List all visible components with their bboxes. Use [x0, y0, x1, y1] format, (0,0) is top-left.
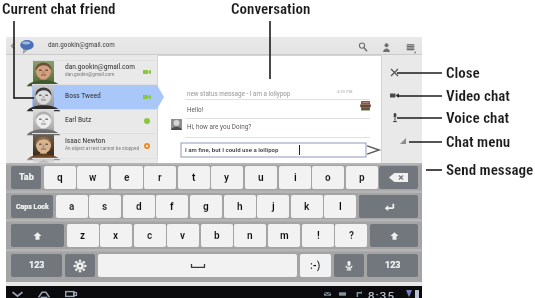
button[interactable]: x	[100, 224, 132, 247]
button[interactable]: f	[156, 195, 188, 218]
button[interactable]: d	[123, 195, 155, 218]
staticText: Send message	[446, 161, 534, 179]
button[interactable]: I am fine, but I could use a lollipop	[181, 143, 366, 157]
button[interactable]: Isaac Newton	[6, 134, 166, 158]
button[interactable]: Tab	[11, 166, 41, 189]
staticText: Video chat	[446, 87, 510, 105]
button[interactable]	[65, 254, 95, 277]
button[interactable]: l	[324, 195, 356, 218]
button[interactable]: h	[224, 195, 256, 218]
button[interactable]: Video chat	[389, 90, 400, 101]
button[interactable]: q	[44, 166, 76, 189]
staticText: Isaac Newton	[65, 137, 106, 145]
staticText: dan.gookin@gmail.com	[65, 72, 115, 78]
button[interactable]	[379, 166, 418, 189]
button[interactable]: 123	[367, 254, 418, 277]
button[interactable]: :-)	[300, 254, 331, 277]
staticText: Earl Butz	[65, 116, 92, 124]
staticText: ?	[349, 230, 354, 242]
button[interactable]: Send message	[364, 141, 382, 159]
staticText: dan.gookin@gmail.com	[48, 41, 115, 48]
staticText: Voice chat	[446, 109, 510, 127]
button[interactable]: Earl Butz	[6, 109, 166, 133]
staticText: k	[304, 201, 310, 213]
staticText: Conversation	[231, 0, 311, 18]
staticText: p	[359, 172, 365, 184]
button[interactable]: Chat menu	[399, 137, 407, 145]
staticText: u	[258, 172, 264, 184]
staticText: v	[180, 230, 186, 242]
button[interactable]: w	[77, 166, 109, 189]
staticText: Close	[446, 64, 480, 82]
staticText: z	[80, 230, 86, 242]
staticText: 8:35	[368, 289, 396, 298]
button[interactable]: c	[134, 224, 166, 247]
button[interactable]: u	[245, 166, 277, 189]
button[interactable]: Back	[7, 40, 19, 52]
button[interactable]: Search	[356, 40, 370, 54]
button[interactable]: y	[211, 166, 243, 189]
button[interactable]	[11, 224, 64, 247]
button[interactable]: r	[144, 166, 176, 189]
button[interactable]: dan.gookin@gmail.com	[6, 60, 166, 84]
staticText: w	[89, 172, 97, 184]
staticText: d	[136, 201, 142, 213]
button[interactable]: ?	[335, 224, 367, 247]
button[interactable]: i	[279, 166, 311, 189]
staticText: e	[124, 172, 130, 184]
button[interactable]: m	[268, 224, 300, 247]
button[interactable]	[359, 195, 418, 218]
staticText: f	[170, 201, 174, 213]
button[interactable]: j	[257, 195, 289, 218]
staticText: Tab	[19, 172, 34, 183]
staticText: Joseph Goebbels	[65, 165, 117, 173]
staticText: t	[192, 172, 196, 184]
staticText: c	[147, 230, 153, 242]
button[interactable]: Menu	[403, 40, 417, 54]
button[interactable]	[98, 254, 297, 277]
staticText: Current chat friend	[2, 0, 116, 18]
staticText: Hi, how are you Doing?	[187, 123, 252, 131]
button[interactable]	[334, 254, 364, 277]
button[interactable]: Recents	[65, 288, 77, 298]
button[interactable]: z	[67, 224, 99, 247]
button[interactable]: Voice chat	[389, 112, 400, 123]
staticText: h	[237, 201, 243, 213]
button[interactable]: v	[167, 224, 199, 247]
button[interactable]: e	[111, 166, 143, 189]
staticText: l	[339, 201, 342, 213]
button[interactable]: g	[190, 195, 222, 218]
button[interactable]: a	[56, 195, 88, 218]
button[interactable]: Back	[11, 288, 23, 298]
staticText: I am fine, but I could use a lollipop	[185, 146, 279, 153]
button[interactable]: Home	[38, 288, 50, 298]
staticText: An object at rest cannot be stopped	[65, 146, 140, 152]
staticText: Chat menu	[446, 133, 511, 151]
staticText: s	[102, 201, 108, 213]
button[interactable]: t	[178, 166, 210, 189]
staticText: y	[224, 172, 230, 184]
staticText: b	[214, 230, 220, 242]
button[interactable]: !	[302, 224, 334, 247]
button[interactable]: Contacts	[379, 40, 393, 54]
staticText: a	[69, 201, 75, 213]
staticText: Hello!	[187, 106, 204, 114]
button[interactable]: o	[312, 166, 344, 189]
button[interactable]: n	[234, 224, 266, 247]
staticText: n	[247, 230, 253, 242]
staticText: 4:35 PM	[337, 89, 353, 94]
button[interactable]: Boss Tweed	[6, 85, 166, 109]
button[interactable]: k	[291, 195, 323, 218]
button[interactable]: Close	[389, 67, 400, 78]
staticText: g	[203, 201, 209, 213]
button[interactable]	[370, 224, 418, 247]
button[interactable]: s	[89, 195, 121, 218]
button[interactable]: p	[346, 166, 378, 189]
button[interactable]: Joseph Goebbels	[6, 158, 166, 182]
staticText: :-)	[310, 260, 321, 272]
button[interactable]: b	[201, 224, 233, 247]
button[interactable]: Caps Lock	[11, 195, 53, 218]
button[interactable]: 123	[11, 254, 62, 277]
staticText: dan.gookin@gmail.com	[65, 63, 135, 71]
staticText: x	[113, 230, 119, 242]
